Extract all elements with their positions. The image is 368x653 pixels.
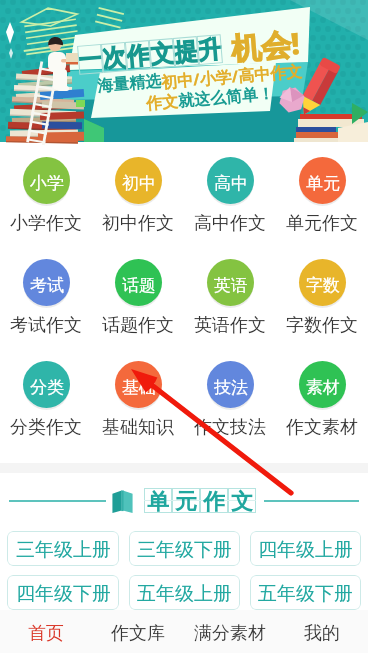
- button[interactable]: 首页: [0, 614, 92, 653]
- staticText: 满分素材: [194, 622, 266, 645]
- button[interactable]: 五年级下册: [250, 575, 361, 610]
- staticText: 英语作文: [194, 314, 266, 337]
- staticText: 作文素材: [286, 416, 358, 439]
- button[interactable]: 高中: [184, 157, 276, 235]
- button[interactable]: 基础: [92, 361, 184, 439]
- button[interactable]: 单元: [276, 157, 368, 235]
- button[interactable]: 三年级上册: [7, 531, 119, 566]
- button[interactable]: 作文库: [92, 614, 184, 653]
- staticText: 素材: [306, 377, 340, 398]
- button[interactable]: 一: [0, 0, 368, 142]
- staticText: 考试作文: [10, 314, 82, 337]
- staticText: 考试: [30, 275, 64, 296]
- staticText: 初中: [122, 173, 156, 194]
- staticText: 次: [101, 42, 127, 73]
- staticText: 提: [173, 36, 199, 67]
- staticText: 单: [147, 488, 169, 513]
- staticText: 海量精选: [96, 71, 162, 96]
- staticText: 一: [77, 44, 103, 75]
- staticText: 首页: [28, 622, 64, 645]
- other: Hint arrow: [0, 0, 368, 653]
- staticText: 高中作文: [194, 212, 266, 235]
- staticText: 话题: [122, 275, 156, 296]
- staticText: 单元作文: [286, 212, 358, 235]
- staticText: 基础: [122, 377, 156, 398]
- staticText: 四年级下册: [16, 582, 111, 606]
- staticText: 就这么简单！: [177, 84, 275, 112]
- staticText: 分类作文: [10, 416, 82, 439]
- staticText: 英语: [214, 275, 248, 296]
- staticText: 字数作文: [286, 314, 358, 337]
- button[interactable]: 四年级上册: [250, 531, 361, 566]
- staticText: 基础知识: [102, 416, 174, 439]
- staticText: 文: [231, 488, 253, 513]
- button[interactable]: 五年级上册: [129, 575, 240, 610]
- staticText: 单元: [306, 173, 340, 194]
- staticText: 文: [149, 38, 175, 69]
- staticText: 初中/小学/高中作文: [160, 60, 303, 93]
- staticText: 作: [203, 488, 225, 513]
- button[interactable]: 英语: [184, 259, 276, 337]
- button[interactable]: 技法: [184, 361, 276, 439]
- button[interactable]: 初中: [92, 157, 184, 235]
- staticText: 作文库: [111, 622, 165, 645]
- staticText: 元: [175, 488, 197, 513]
- button[interactable]: 四年级下册: [7, 575, 119, 610]
- button[interactable]: 满分素材: [184, 614, 276, 653]
- staticText: 五年级下册: [258, 582, 353, 606]
- staticText: 作文技法: [194, 416, 266, 439]
- staticText: 三年级上册: [16, 538, 111, 562]
- button[interactable]: 三年级下册: [129, 531, 240, 566]
- staticText: 高中: [214, 173, 248, 194]
- button[interactable]: 素材: [276, 361, 368, 439]
- button[interactable]: 考试: [0, 259, 92, 337]
- staticText: 五年级上册: [137, 582, 232, 606]
- button[interactable]: 我的: [276, 614, 368, 653]
- button[interactable]: 分类: [0, 361, 92, 439]
- staticText: 小学作文: [10, 212, 82, 235]
- staticText: 初中作文: [102, 212, 174, 235]
- button[interactable]: 小学: [0, 157, 92, 235]
- staticText: 机会!: [229, 22, 301, 69]
- staticText: 我的: [304, 622, 340, 645]
- button[interactable]: 话题: [92, 259, 184, 337]
- staticText: 技法: [214, 377, 248, 398]
- button[interactable]: 字数: [276, 259, 368, 337]
- staticText: 三年级下册: [137, 538, 232, 562]
- staticText: 分类: [30, 377, 64, 398]
- staticText: 话题作文: [102, 314, 174, 337]
- staticText: 四年级上册: [258, 538, 353, 562]
- staticText: 升: [197, 34, 223, 65]
- staticText: 作: [125, 40, 151, 71]
- staticText: 小学: [30, 173, 64, 194]
- staticText: 作文: [145, 92, 179, 114]
- staticText: 字数: [306, 275, 340, 296]
